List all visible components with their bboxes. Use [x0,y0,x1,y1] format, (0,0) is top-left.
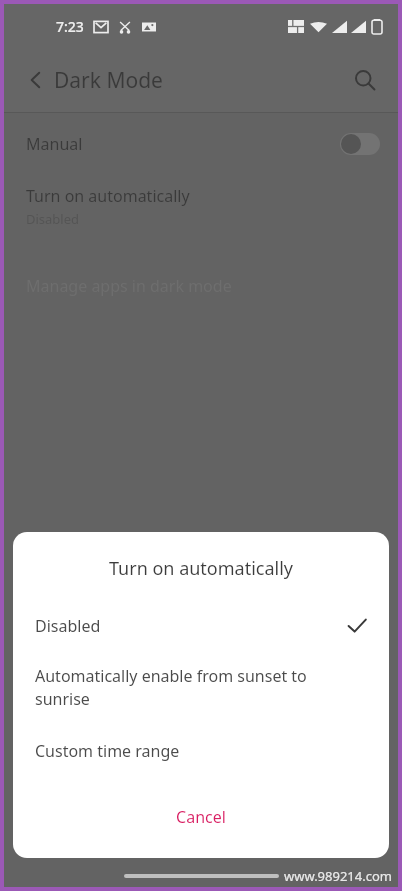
button[interactable]: Automatically enable from sunset to sunr… [13,661,389,714]
button[interactable]: Back [16,60,56,100]
staticText: Turn on automatically [13,556,389,581]
staticText: Automatically enable from sunset to sunr… [35,665,314,710]
staticText: Manual [26,133,83,155]
staticText: Manage apps in dark mode [26,275,232,297]
staticText: Turn on automatically [26,185,190,207]
staticText: Custom time range [35,740,180,762]
button[interactable]: Manual toggle [340,133,380,155]
button[interactable]: Manual [4,113,398,175]
staticText: Disabled [35,615,101,637]
button[interactable]: Custom time range [13,736,389,766]
button[interactable]: Turn on automatically [4,175,398,242]
button[interactable]: Disabled [13,605,389,647]
staticText: www.989214.com [284,867,392,885]
staticText: Cancel [13,806,389,828]
staticText: 7:23 [56,17,84,36]
button[interactable]: Search [344,59,386,101]
staticText: Dark Mode [54,66,163,95]
button[interactable]: Cancel [13,800,389,834]
staticText: Disabled [26,210,80,228]
